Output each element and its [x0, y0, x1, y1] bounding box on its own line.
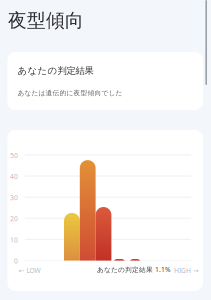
- staticText: あなたの判定結果: [17, 65, 93, 76]
- staticText: 夜型傾向: [8, 9, 84, 32]
- staticText: あなたは遺伝的に夜型傾向でした: [17, 89, 122, 97]
- staticText: あなたの判定結果 1.1%: [97, 265, 171, 274]
- staticText: 10: [10, 235, 18, 244]
- staticText: HIGH →: [174, 266, 199, 275]
- staticText: ← LOW: [18, 266, 40, 275]
- staticText: 30: [10, 193, 18, 202]
- staticText: 20: [10, 214, 18, 223]
- staticText: 40: [10, 172, 18, 181]
- staticText: 50: [10, 151, 18, 160]
- staticText: 0: [14, 256, 18, 265]
